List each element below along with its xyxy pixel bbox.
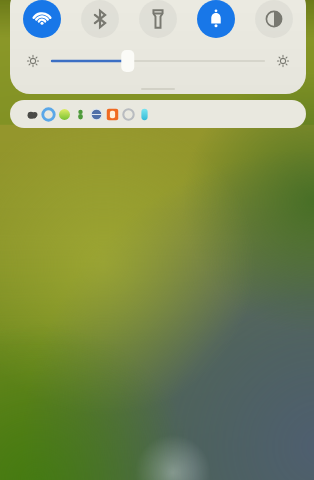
button[interactable]: Ring mode (197, 0, 235, 38)
button[interactable]: Download (106, 108, 119, 121)
button[interactable]: Dark theme (255, 0, 293, 38)
button[interactable]: App notification (58, 108, 71, 121)
button[interactable]: Weather (10, 100, 306, 128)
button[interactable]: Brightness (24, 48, 292, 74)
button[interactable]: Browser (90, 108, 103, 121)
button[interactable]: Flashlight (139, 0, 177, 38)
button[interactable]: Media (138, 108, 151, 121)
button[interactable]: Messages (42, 108, 55, 121)
button[interactable]: Notification (122, 108, 135, 121)
button[interactable]: Contact (74, 108, 87, 121)
button[interactable]: Weather (26, 108, 39, 121)
button[interactable]: Bluetooth (81, 0, 119, 38)
button[interactable]: Wi-Fi (23, 0, 61, 38)
